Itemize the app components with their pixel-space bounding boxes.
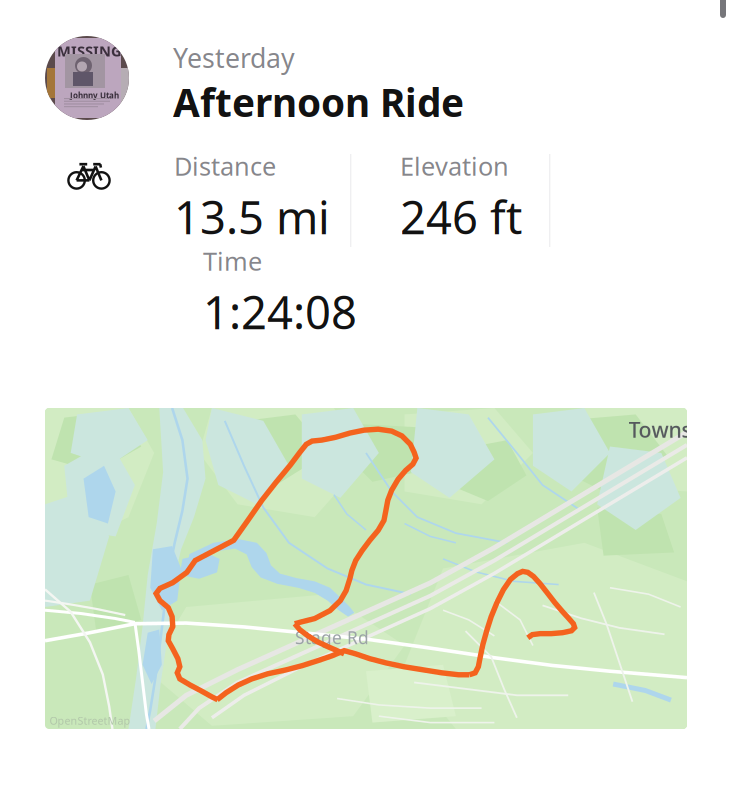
staticText: Towns bbox=[628, 415, 691, 444]
staticText: Stage Rd bbox=[295, 626, 369, 649]
staticText: Afternoon Ride bbox=[173, 76, 464, 128]
staticText: Elevation bbox=[400, 149, 509, 183]
staticText: 1:24:08 bbox=[203, 282, 357, 342]
staticText: Johnny Utah bbox=[70, 90, 119, 101]
staticText: 13.5 mi bbox=[174, 187, 330, 247]
button[interactable]: Activity route map bbox=[45, 408, 687, 729]
staticText: Yesterday bbox=[173, 40, 295, 75]
button[interactable]: MISSING bbox=[45, 36, 685, 128]
staticText: 246 ft bbox=[400, 187, 522, 247]
staticText: OpenStreetMap bbox=[49, 713, 130, 728]
staticText: MISSING bbox=[57, 41, 122, 60]
staticText: Distance bbox=[174, 149, 276, 183]
staticText: Time bbox=[203, 244, 262, 278]
